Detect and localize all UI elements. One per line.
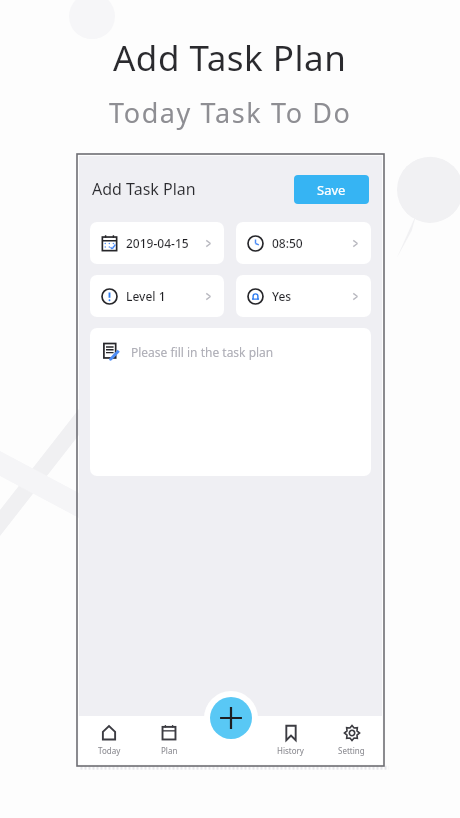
staticText: Level 1	[126, 288, 166, 304]
button[interactable]: 08:50	[236, 222, 371, 264]
button[interactable]: Please fill in the task plan	[90, 328, 371, 476]
button[interactable]: Level 1	[90, 275, 224, 317]
staticText: Yes	[272, 288, 292, 304]
staticText: Setting	[338, 745, 365, 756]
staticText: Save	[317, 181, 346, 199]
staticText: 08:50	[272, 235, 303, 251]
staticText: Today	[98, 745, 121, 756]
button[interactable]: Today	[79, 724, 139, 756]
button[interactable]: Setting	[321, 724, 382, 756]
staticText: Plan	[161, 745, 178, 756]
button[interactable]: Save	[294, 175, 369, 204]
button[interactable]: History	[260, 724, 321, 756]
button[interactable]: Yes	[236, 275, 371, 317]
staticText: Please fill in the task plan	[131, 344, 274, 360]
staticText: Add Task Plan	[113, 34, 347, 82]
staticText: 2019-04-15	[126, 235, 189, 251]
staticText: Today Task To Do	[109, 94, 352, 131]
button[interactable]: Add task	[210, 697, 252, 739]
staticText: History	[277, 745, 304, 756]
button[interactable]: 2019-04-15	[90, 222, 224, 264]
staticText: Add Task Plan	[92, 178, 196, 200]
button[interactable]: Plan	[139, 724, 199, 756]
